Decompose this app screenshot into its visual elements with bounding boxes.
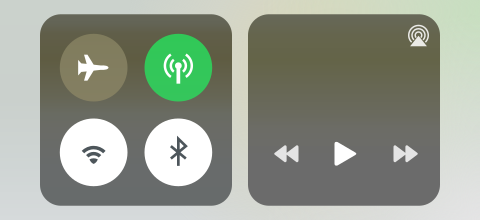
button[interactable]: Wi-Fi bbox=[60, 118, 127, 186]
button[interactable]: Cellular Data bbox=[144, 34, 212, 101]
button[interactable]: Play bbox=[321, 132, 371, 176]
button[interactable]: Fast Forward bbox=[381, 132, 431, 176]
button[interactable]: AirPlay bbox=[403, 19, 434, 51]
button[interactable]: Bluetooth bbox=[144, 118, 212, 186]
button[interactable]: Airplane Mode bbox=[60, 34, 127, 101]
button[interactable]: Rewind bbox=[261, 132, 311, 176]
